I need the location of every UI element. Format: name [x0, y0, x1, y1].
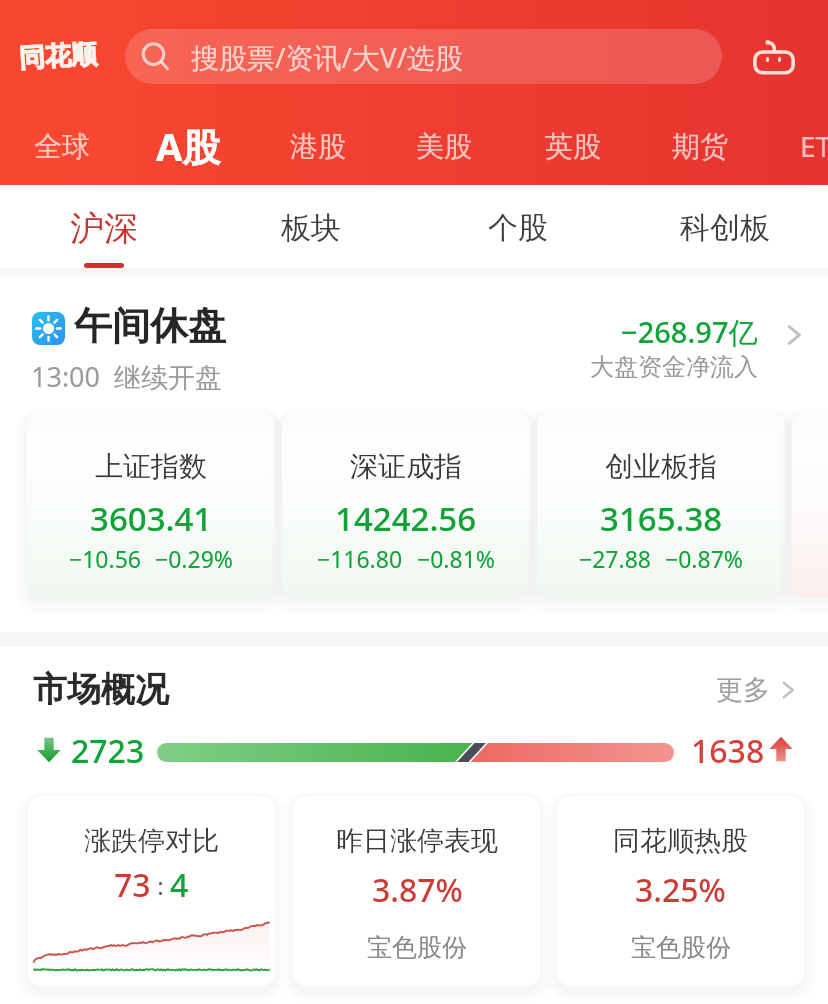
button[interactable]: 全球 [34, 112, 90, 180]
staticText: 13:00 继续开盘 [31, 358, 223, 395]
staticText: −27.88 [579, 543, 651, 574]
button[interactable]: 美股 [416, 112, 472, 180]
staticText: 午间休盘 [74, 302, 226, 350]
button[interactable]: 同花顺 [19, 40, 97, 73]
staticText: ETF [800, 127, 828, 165]
staticText: 上证指数 [95, 449, 207, 484]
staticText: 同花顺 [18, 38, 98, 75]
button[interactable]: 昨日涨停表现 [293, 796, 540, 986]
staticText: 宝色股份 [631, 932, 731, 963]
button[interactable]: 创业板指 [537, 411, 785, 598]
staticText: 更多 [716, 673, 770, 707]
staticText: −0.29% [155, 543, 233, 574]
staticText: 同花顺热股 [613, 824, 748, 858]
staticText: 沪深 [70, 207, 138, 250]
button[interactable]: 搜股票/资讯/大V/选股 [125, 29, 722, 84]
button[interactable]: 英股 [545, 112, 601, 180]
staticText: 期货 [672, 129, 728, 164]
button[interactable]: AI assistant [742, 24, 806, 88]
staticText: 3165.38 [600, 496, 723, 541]
staticText: 科创板 [680, 209, 770, 247]
staticText: 3603.41 [90, 496, 213, 541]
button[interactable]: 板块 [207, 186, 414, 281]
button[interactable]: ETF [800, 112, 828, 180]
staticText: 2723 [71, 729, 145, 773]
staticText: 美股 [416, 129, 472, 164]
staticText: 个股 [488, 209, 548, 247]
staticText: −116.80 [317, 543, 403, 574]
button[interactable]: A股 [156, 112, 221, 180]
staticText: 深证成指 [350, 449, 462, 484]
staticText: 3.25% [635, 868, 726, 912]
staticText: 73 [114, 863, 151, 907]
button[interactable]: 沪深 [0, 186, 207, 281]
staticText: −268.97亿 [621, 312, 758, 352]
button[interactable]: 期货 [672, 112, 728, 180]
button[interactable]: 同花顺热股 [557, 796, 804, 986]
button[interactable]: 更多 [716, 672, 801, 708]
staticText: −10.56 [69, 543, 141, 574]
staticText: 3.87% [372, 868, 463, 912]
button[interactable]: 科创板 [621, 186, 828, 281]
staticText: 14242.56 [335, 496, 477, 541]
staticText: 板块 [281, 209, 341, 247]
staticText: 英股 [545, 129, 601, 164]
staticText: 昨日涨停表现 [336, 824, 498, 858]
staticText: : [151, 869, 170, 902]
staticText: 创业板指 [605, 449, 717, 484]
staticText: 搜股票/资讯/大V/选股 [191, 38, 464, 76]
button[interactable]: 港股 [290, 112, 346, 180]
button[interactable]: 个股 [414, 186, 621, 281]
button[interactable]: 上证指数 [27, 411, 275, 598]
staticText: 大盘资金净流入 [590, 352, 758, 382]
staticText: 港股 [290, 129, 346, 164]
staticText: 4 [170, 863, 189, 907]
staticText: 全球 [34, 129, 90, 164]
button[interactable]: 深证成指 [282, 411, 530, 598]
button[interactable]: 午间休盘 [0, 292, 828, 397]
staticText: 1638 [691, 729, 765, 773]
staticText: −0.81% [417, 543, 495, 574]
staticText: 市场概况 [33, 668, 169, 711]
staticText: 宝色股份 [367, 932, 467, 963]
staticText: −0.87% [665, 543, 743, 574]
staticText: 涨跌停对比 [84, 824, 219, 858]
button[interactable]: 涨跌停对比 [28, 796, 275, 986]
staticText: A股 [156, 120, 221, 172]
